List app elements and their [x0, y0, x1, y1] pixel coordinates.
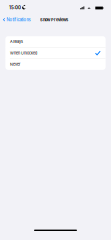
- button[interactable]: When Unlocked: [5, 47, 106, 58]
- button[interactable]: Always: [5, 36, 106, 47]
- staticText: Notifications: [6, 17, 30, 22]
- staticText: 15:00: [9, 5, 21, 10]
- staticText: Show Previews: [40, 17, 68, 22]
- staticText: Never: [10, 62, 20, 67]
- button[interactable]: Notifications: [0, 14, 32, 25]
- staticText: Always: [10, 39, 23, 44]
- button[interactable]: Never: [5, 59, 106, 70]
- staticText: When Unlocked: [10, 51, 37, 55]
